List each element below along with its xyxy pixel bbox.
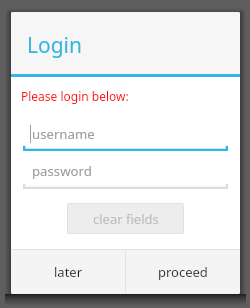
button[interactable]: clear fields bbox=[67, 203, 184, 234]
staticText: proceed bbox=[158, 263, 208, 281]
button[interactable]: proceed bbox=[126, 249, 240, 294]
staticText: Please login below: bbox=[21, 88, 129, 104]
button[interactable]: username bbox=[23, 125, 228, 151]
staticText: clear fields bbox=[93, 210, 159, 228]
staticText: password bbox=[32, 162, 92, 180]
button[interactable]: password bbox=[23, 162, 228, 189]
button[interactable]: later bbox=[11, 249, 125, 294]
staticText: later bbox=[54, 263, 83, 281]
staticText: username bbox=[32, 125, 95, 143]
staticText: Login bbox=[27, 31, 83, 60]
